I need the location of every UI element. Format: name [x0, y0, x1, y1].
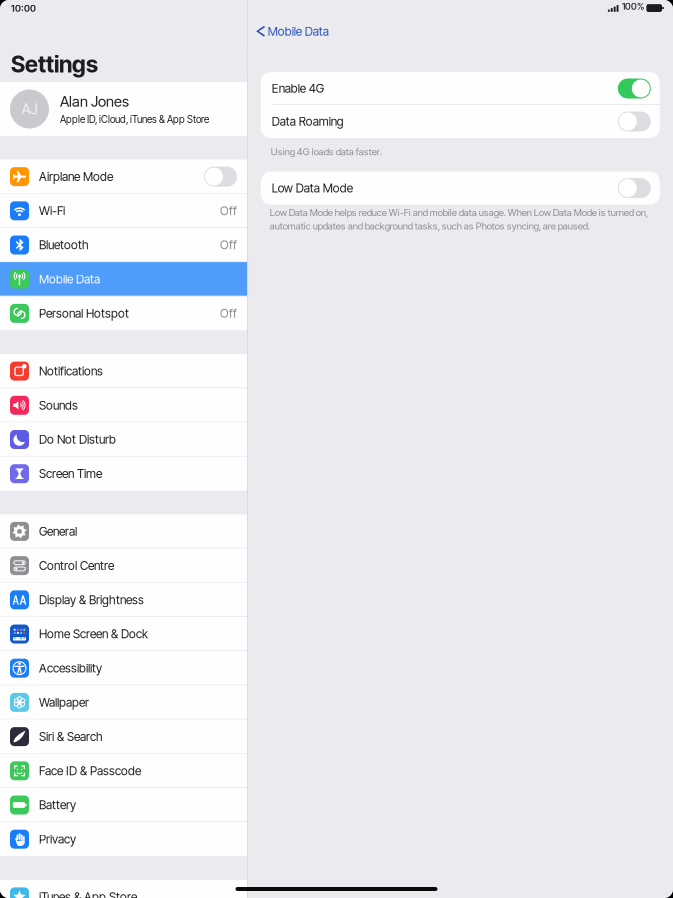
staticText: Home Screen & Dock — [39, 627, 148, 641]
button[interactable]: Accessibility — [0, 651, 247, 685]
staticText: Privacy — [39, 832, 76, 846]
staticText: Mobile Data — [39, 272, 100, 286]
button[interactable]: Face ID & Passcode — [0, 754, 247, 788]
staticText: Enable 4G — [272, 81, 324, 96]
staticText: Using 4G loads data faster. — [271, 146, 382, 158]
staticText: Personal Hotspot — [39, 306, 129, 321]
staticText: Wallpaper — [39, 695, 89, 710]
button[interactable]: Notifications — [0, 354, 247, 388]
button[interactable]: Mobile Data — [248, 14, 673, 45]
staticText: Do Not Disturb — [39, 432, 116, 447]
staticText: Battery — [39, 798, 76, 812]
staticText: Control Centre — [39, 558, 114, 573]
staticText: Alan Jones — [60, 93, 129, 110]
staticText: 100% — [622, 1, 644, 12]
button[interactable]: Privacy — [0, 822, 247, 856]
staticText: Screen Time — [39, 466, 102, 481]
button[interactable]: Airplane Mode — [0, 159, 247, 194]
button[interactable]: Display & Brightness — [0, 583, 247, 617]
staticText: Wi-Fi — [39, 203, 65, 218]
staticText: Bluetooth — [39, 238, 89, 252]
staticText: Display & Brightness — [39, 592, 144, 607]
staticText: Off — [220, 203, 237, 218]
button[interactable]: Turn on — [618, 111, 651, 131]
staticText: Off — [220, 306, 237, 321]
staticText: automatic updates and background tasks, … — [270, 220, 590, 232]
staticText: Settings — [11, 51, 98, 78]
button[interactable]: Turn on — [204, 167, 237, 187]
button[interactable]: Personal Hotspot — [0, 296, 247, 330]
button[interactable]: Turn on — [618, 178, 651, 198]
button[interactable]: Wi-Fi — [0, 194, 247, 228]
button[interactable]: Sounds — [0, 388, 247, 422]
staticText: Siri & Search — [39, 729, 103, 744]
button[interactable]: Siri & Search — [0, 719, 247, 754]
staticText: Mobile Data — [268, 24, 329, 38]
button[interactable]: Battery — [0, 788, 247, 822]
staticText: Apple ID, iCloud, iTunes & App Store — [60, 113, 209, 125]
button[interactable]: iTunes & App Store — [0, 880, 247, 898]
staticText: Data Roaming — [272, 114, 344, 129]
button[interactable]: AJ — [0, 82, 247, 136]
button[interactable]: General — [0, 514, 247, 548]
staticText: iTunes & App Store — [39, 890, 137, 898]
staticText: General — [39, 524, 77, 539]
staticText: 10:00 — [11, 3, 36, 14]
button[interactable]: Turn off — [618, 78, 651, 98]
button[interactable]: Wallpaper — [0, 685, 247, 719]
button[interactable]: Home Screen & Dock — [0, 617, 247, 651]
staticText: Low Data Mode helps reduce Wi-Fi and mob… — [270, 207, 648, 218]
button[interactable]: Mobile Data — [0, 262, 247, 296]
button[interactable]: Bluetooth — [0, 228, 247, 262]
staticText: Accessibility — [39, 661, 102, 675]
staticText: Off — [220, 238, 237, 252]
button[interactable]: Screen Time — [0, 457, 247, 491]
staticText: Face ID & Passcode — [39, 763, 141, 778]
staticText: AJ — [21, 100, 37, 118]
staticText: Sounds — [39, 398, 78, 412]
button[interactable]: Do Not Disturb — [0, 422, 247, 457]
staticText: Notifications — [39, 364, 103, 378]
staticText: Airplane Mode — [39, 169, 113, 184]
button[interactable]: Control Centre — [0, 548, 247, 583]
staticText: Low Data Mode — [272, 181, 353, 195]
